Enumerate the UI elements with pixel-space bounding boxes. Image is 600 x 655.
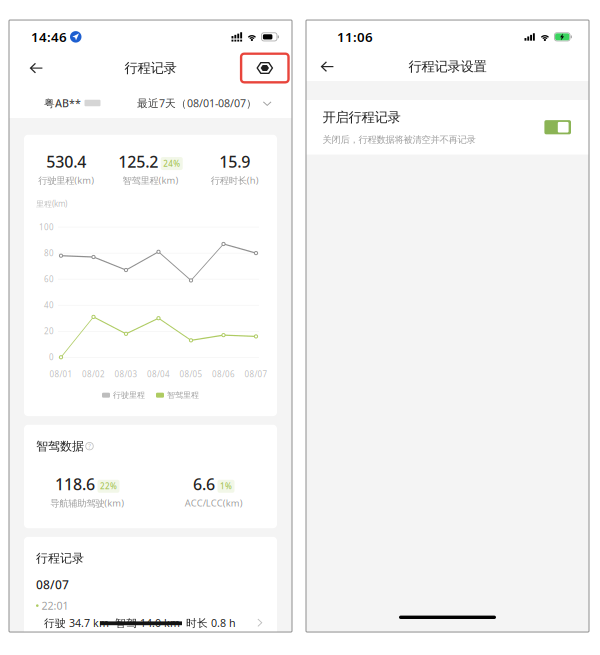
staticText: 08/07 (244, 369, 267, 380)
staticText: 最近7天（08/01-08/07） (137, 96, 257, 110)
staticText: 20 (44, 326, 54, 336)
staticText: 80 (44, 248, 54, 258)
button[interactable]: 22:01 (24, 592, 277, 640)
staticText: 开启行程记录 (322, 109, 400, 125)
staticText: 22% (100, 481, 117, 492)
staticText: 粤AB** (44, 96, 81, 110)
staticText: 100 (39, 222, 54, 232)
staticText: 08/04 (147, 369, 170, 380)
staticText: 08/01 (49, 369, 72, 380)
staticText: 08/06 (212, 369, 235, 380)
staticText: 08/05 (179, 369, 202, 380)
staticText: 行程时长(h) (211, 174, 259, 186)
staticText: 15.9 (219, 151, 250, 172)
button[interactable]: 返回 (316, 54, 338, 79)
staticText: 08/07 (36, 577, 69, 592)
staticText: 6.6 (193, 473, 215, 495)
staticText: 08/03 (114, 369, 137, 380)
staticText: 行驶里程(km) (38, 174, 94, 186)
staticText: 行驶里程 (113, 390, 145, 400)
staticText: 行程记录 (36, 551, 84, 566)
staticText: 24% (163, 158, 180, 169)
staticText: 0 (49, 352, 54, 363)
staticText: 智驾里程(km) (122, 174, 178, 186)
staticText: 125.2 (118, 151, 158, 172)
staticText: 11:06 (337, 28, 373, 46)
staticText: 60 (44, 274, 54, 284)
staticText: 导航辅助驾驶(km) (50, 497, 124, 509)
button[interactable]: 行程记录设置 (241, 54, 288, 82)
staticText: 1% (220, 481, 232, 492)
staticText: 智驾数据 (36, 439, 84, 453)
staticText: 22:01 (42, 598, 69, 613)
staticText: 118.6 (55, 473, 95, 495)
staticText: 行驶 34.7 km 智驾 14.0 km 时长 0.8 h (44, 616, 236, 630)
staticText: 里程(km) (36, 198, 67, 209)
staticText: 08/02 (82, 369, 105, 380)
button[interactable]: 开启行程记录 (306, 100, 589, 154)
staticText: 行程记录设置 (408, 58, 486, 75)
staticText: ? (88, 442, 91, 451)
staticText: 行程记录 (124, 60, 176, 76)
staticText: 14:46 (31, 28, 67, 46)
staticText: 530.4 (46, 151, 86, 172)
staticText: ACC/LCC(km) (185, 497, 243, 509)
staticText: 关闭后，行程数据将被清空并不再记录 (322, 134, 475, 145)
button[interactable]: 返回 (25, 55, 47, 80)
staticText: 智驾里程 (167, 390, 199, 400)
staticText: 40 (44, 300, 54, 310)
